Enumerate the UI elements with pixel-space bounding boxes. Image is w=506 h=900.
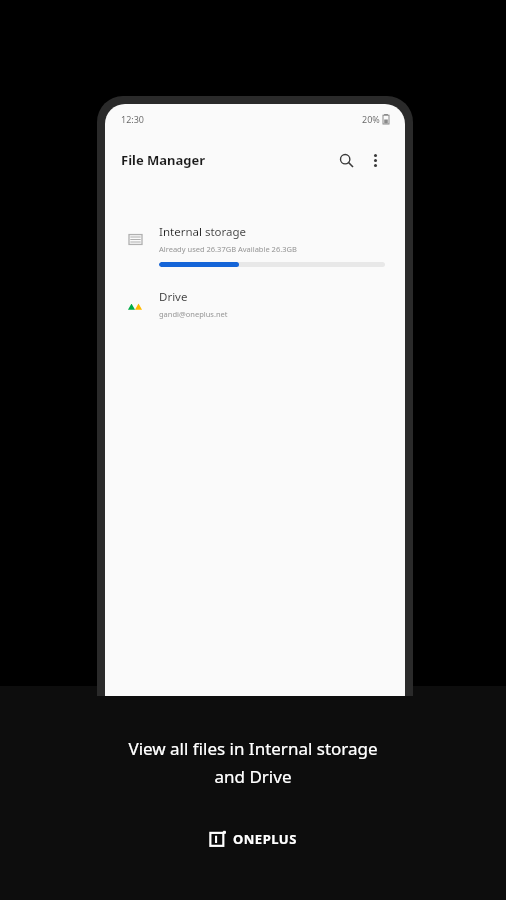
- staticText: 20%: [362, 113, 380, 125]
- staticText: Drive: [159, 289, 188, 305]
- staticText: Already used 26.37GB Available 26.3GB: [159, 244, 297, 254]
- staticText: 12:30: [121, 113, 145, 125]
- staticText: Internal storage: [159, 224, 247, 240]
- staticText: gandi@oneplus.net: [159, 309, 228, 319]
- staticText: ONEPLUS: [233, 830, 297, 848]
- button[interactable]: Search: [331, 145, 361, 175]
- staticText: File Manager: [121, 151, 206, 169]
- button[interactable]: Drive: [105, 289, 405, 319]
- button[interactable]: Internal storage: [105, 224, 405, 267]
- button[interactable]: More options: [361, 146, 389, 174]
- staticText: View all files in Internal storage and D…: [128, 737, 378, 788]
